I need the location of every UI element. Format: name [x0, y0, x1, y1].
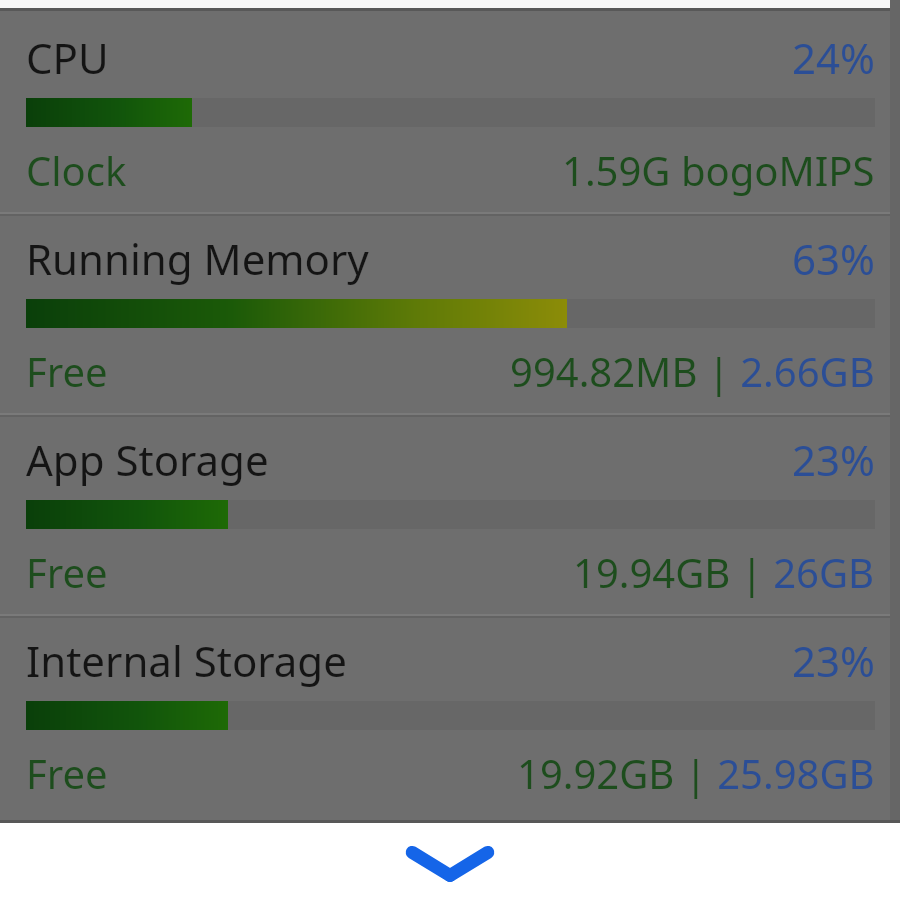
staticText: 24% [792, 29, 875, 86]
staticText: Free [26, 344, 108, 398]
button[interactable]: App Storage [0, 417, 900, 614]
staticText: 1.59G bogoMIPS [562, 143, 875, 197]
staticText: App Storage [26, 431, 269, 488]
button[interactable]: CPU [0, 11, 900, 212]
staticText: Clock [26, 143, 127, 197]
staticText: 23% [792, 431, 875, 488]
staticText: Free [26, 545, 108, 599]
staticText: 19.92GB | 25.98GB [517, 746, 875, 800]
staticText: CPU [26, 29, 109, 86]
button[interactable]: Collapse [0, 823, 900, 900]
staticText: 63% [792, 230, 875, 287]
staticText: 994.82MB | 2.66GB [510, 344, 875, 398]
button[interactable]: Internal Storage [0, 618, 900, 815]
staticText: Free [26, 746, 108, 800]
staticText: Running Memory [26, 230, 369, 287]
staticText: Internal Storage [26, 632, 347, 689]
staticText: 19.94GB | 26GB [573, 545, 875, 599]
button[interactable]: Running Memory [0, 216, 900, 413]
staticText: 23% [792, 632, 875, 689]
